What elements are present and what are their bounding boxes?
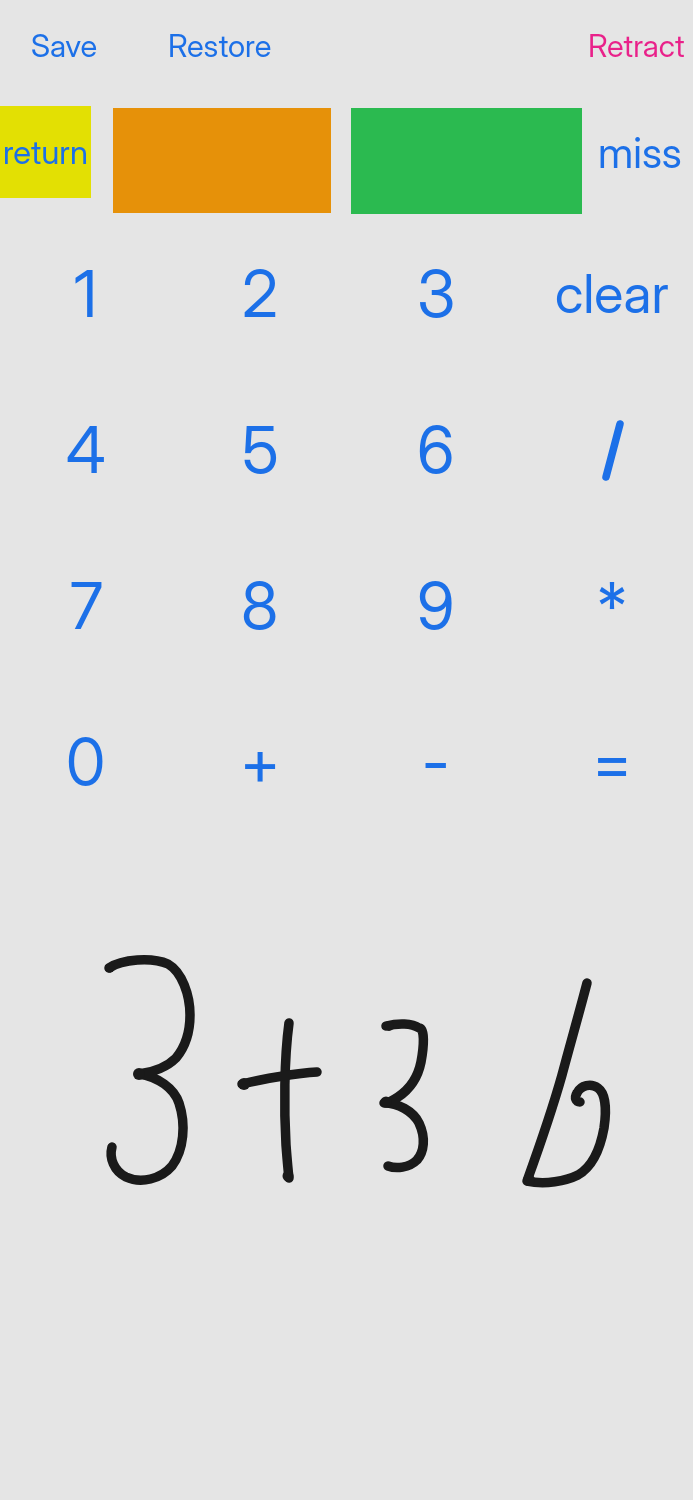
button[interactable]: Restore — [130, 11, 310, 81]
staticText: clear — [555, 261, 669, 326]
staticText: = — [592, 723, 633, 800]
button[interactable]: 0 — [1, 686, 171, 836]
button[interactable]: 5 — [175, 374, 345, 524]
staticText: Save — [31, 27, 98, 65]
staticText: 9 — [417, 567, 455, 644]
staticText: 1 — [74, 255, 98, 332]
button[interactable]: 7 — [1, 530, 171, 680]
staticText: miss — [598, 127, 682, 178]
staticText: 4 — [66, 411, 106, 488]
button[interactable]: + — [175, 686, 345, 836]
button[interactable]: return — [0, 106, 91, 198]
button[interactable]: * — [527, 530, 693, 680]
staticText: 5 — [242, 411, 279, 488]
button[interactable]: clear — [527, 218, 693, 368]
button[interactable]: 8 — [175, 530, 345, 680]
button[interactable]: 4 — [1, 374, 171, 524]
staticText: 7 — [70, 567, 103, 644]
button[interactable]: 2 — [175, 218, 345, 368]
button[interactable]: - — [351, 686, 521, 836]
staticText: 0 — [66, 723, 106, 800]
button[interactable]: 3 — [351, 218, 521, 368]
staticText: + — [240, 723, 281, 800]
button[interactable]: 9 — [351, 530, 521, 680]
staticText: return — [3, 132, 88, 172]
button[interactable]: 6 — [351, 374, 521, 524]
button[interactable]: 1 — [1, 218, 171, 368]
staticText: - — [422, 723, 450, 800]
button[interactable]: miss — [570, 112, 693, 192]
staticText: 3 — [417, 255, 456, 332]
staticText: * — [597, 567, 627, 644]
staticText: 8 — [241, 567, 279, 644]
staticText: 2 — [242, 255, 278, 332]
staticText: 6 — [417, 411, 455, 488]
button[interactable]: Retract — [581, 11, 691, 81]
button[interactable] — [527, 374, 693, 524]
staticText: Restore — [168, 27, 272, 65]
button[interactable]: = — [527, 686, 693, 836]
staticText: Retract — [588, 27, 685, 65]
button[interactable]: Save — [0, 11, 134, 81]
